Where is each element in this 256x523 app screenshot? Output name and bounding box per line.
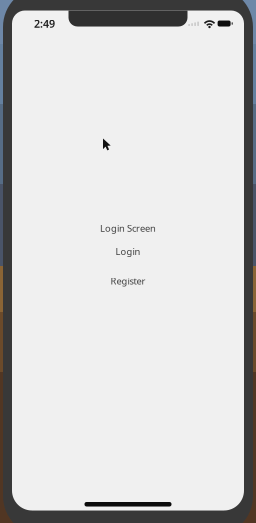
staticText: Register: [110, 275, 145, 287]
staticText: 2:49: [34, 16, 55, 31]
staticText: Login: [115, 245, 140, 258]
staticText: Login Screen: [100, 222, 156, 234]
button[interactable]: Register: [110, 275, 145, 287]
button[interactable]: Login: [115, 245, 140, 258]
